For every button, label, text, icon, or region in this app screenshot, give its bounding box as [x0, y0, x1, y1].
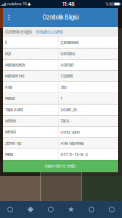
button[interactable]: Locate	[20, 201, 41, 218]
staticText: Zemin Tip	[5, 141, 21, 146]
staticText: 11:48	[62, 1, 74, 7]
staticText: Ada	[5, 85, 12, 90]
staticText: 24.881,26	[60, 107, 76, 112]
staticText: Öznitelik Bilgisi	[5, 30, 32, 34]
staticText: %83	[105, 2, 113, 6]
button[interactable]: Layers	[102, 201, 122, 218]
staticText: İlçe	[5, 51, 11, 56]
button[interactable]: Favourites	[61, 201, 81, 218]
staticText: Deniz Sahili	[60, 130, 80, 135]
staticText: Gelibolu	[60, 51, 74, 56]
staticText: Nitelik	[5, 119, 16, 123]
staticText: G17-D-15-B-2	[60, 152, 87, 157]
button[interactable]: Bina/BG Listesi	[34, 27, 65, 37]
button[interactable]: Refresh	[0, 201, 20, 218]
staticText: Adilhan	[60, 63, 73, 67]
button[interactable]: Info	[41, 201, 61, 218]
staticText: Ana Taşınmaz	[60, 141, 84, 146]
button[interactable]: Favorilere ekle	[3, 160, 118, 172]
button[interactable]: Menu	[3, 8, 15, 27]
staticText: Bina/BG Listesi	[36, 30, 63, 34]
staticText: Mahalle/Köy	[5, 63, 25, 67]
staticText: Mevkii	[5, 130, 16, 135]
staticText: Çanakkale	[60, 40, 78, 45]
staticText: Tarla	[60, 119, 69, 123]
button[interactable]: Öznitelik Bilgisi	[3, 27, 34, 37]
staticText: Favorilere ekle	[45, 163, 76, 169]
staticText: İl	[5, 40, 7, 45]
staticText: vodafone TR	[6, 2, 26, 6]
staticText: Pafta	[5, 152, 13, 157]
staticText: Öznitelik Bilgisi	[42, 14, 78, 21]
staticText: 382	[60, 85, 66, 90]
staticText: Tapu Alanı	[5, 107, 23, 112]
staticText: Mahalle No	[5, 74, 24, 79]
staticText: 1	[60, 96, 62, 101]
staticText: Parsel	[5, 96, 15, 101]
button[interactable]: Measure	[81, 201, 102, 218]
staticText: 132866	[60, 74, 72, 79]
